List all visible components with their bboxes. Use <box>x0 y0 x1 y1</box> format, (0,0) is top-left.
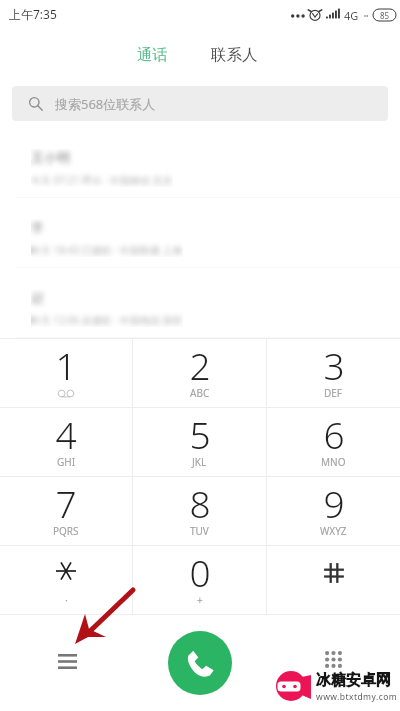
staticText: GHI <box>57 455 76 469</box>
staticText: 上午7:35 <box>9 6 57 22</box>
staticText: JKL <box>192 455 207 469</box>
staticText: 9 <box>323 478 345 528</box>
staticText: PQRS <box>53 524 79 538</box>
staticText: 3 <box>323 340 345 390</box>
staticText: 今天 07:21 呼出 · 中国移动 北京 <box>31 173 173 187</box>
staticText: 0 <box>189 547 211 597</box>
button[interactable]: Menu <box>49 643 85 679</box>
staticText: 王小明 <box>31 149 70 165</box>
staticText: · <box>65 593 68 607</box>
button[interactable]: 赵 <box>0 268 400 338</box>
button[interactable]: · <box>0 546 132 614</box>
button[interactable]: Dialpad <box>315 641 351 677</box>
button[interactable]: 1 <box>0 339 132 407</box>
staticText: 6 <box>323 409 345 459</box>
staticText: 昨天 12:06 未接听 · 中国电信 深圳 <box>31 313 183 327</box>
button[interactable]: 7 <box>0 477 132 545</box>
staticText: 搜索568位联系人 <box>55 95 156 113</box>
staticText: MNO <box>321 455 346 469</box>
button[interactable]: 8 <box>133 477 266 545</box>
button[interactable]: 0 <box>133 546 266 614</box>
staticText: ABC <box>190 386 210 400</box>
staticText: 2 <box>189 340 211 390</box>
staticText: 赵 <box>31 289 44 305</box>
staticText: TUV <box>190 524 209 538</box>
staticText: DEF <box>324 386 343 400</box>
staticText: www.btxtdmy.com <box>316 691 398 703</box>
button[interactable]: 通话 <box>129 40 176 70</box>
button[interactable]: 5 <box>133 408 266 476</box>
button[interactable]: 2 <box>133 339 266 407</box>
staticText: 昨天 18:43 已接听 · 中国联通 上海 <box>31 243 183 257</box>
button[interactable]: 4 <box>0 408 132 476</box>
staticText: WXYZ <box>320 524 347 538</box>
staticText: + <box>197 593 203 607</box>
staticText: 8 <box>189 478 211 528</box>
staticText: 冰糖安卓网 <box>316 671 391 690</box>
button[interactable]: 6 <box>267 408 400 476</box>
staticText: 联系人 <box>211 45 258 65</box>
staticText: 85 <box>380 10 390 21</box>
staticText: 通话 <box>137 45 168 65</box>
button[interactable]: 3 <box>267 339 400 407</box>
button[interactable]: 搜索568位联系人 <box>12 86 388 121</box>
button[interactable]: 李 <box>0 198 400 268</box>
staticText: 4G <box>344 8 359 23</box>
button[interactable]: 王小明 <box>0 128 400 198</box>
staticText: 5 <box>189 409 211 459</box>
staticText: 1 <box>55 340 77 390</box>
staticText: 7 <box>55 478 77 528</box>
button[interactable]: 9 <box>267 477 400 545</box>
staticText: 4 <box>55 409 77 459</box>
staticText: 李 <box>31 219 44 235</box>
button[interactable]: Call <box>168 631 232 695</box>
button[interactable] <box>267 546 400 614</box>
button[interactable]: 联系人 <box>203 40 266 70</box>
